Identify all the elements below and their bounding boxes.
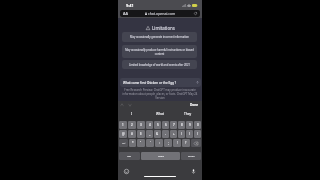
button[interactable]: 3 xyxy=(137,121,145,129)
staticText: 9 xyxy=(189,123,191,127)
staticText: ABC xyxy=(127,155,132,158)
staticText: chat.openai.com xyxy=(148,11,176,16)
staticText: ) xyxy=(189,132,190,136)
button[interactable]: What xyxy=(146,109,174,119)
button[interactable]: Backspace xyxy=(191,139,201,147)
staticText: Limitations xyxy=(152,25,175,31)
button[interactable]: ! xyxy=(173,139,181,147)
button[interactable]: They xyxy=(174,109,202,119)
staticText: " xyxy=(140,141,142,145)
staticText: May occasionally generate incorrect info… xyxy=(124,35,195,39)
staticText: @ xyxy=(122,132,125,136)
button[interactable]: ( xyxy=(178,130,185,138)
button[interactable]: Limited knowledge of world and events af… xyxy=(122,60,197,69)
button[interactable]: 8 xyxy=(178,121,185,129)
button[interactable]: space xyxy=(141,152,180,160)
staticText: 6 xyxy=(165,123,167,127)
staticText: 9:41 xyxy=(126,3,134,8)
staticText: & xyxy=(156,132,159,136)
staticText: ; xyxy=(168,141,169,145)
staticText: return xyxy=(188,155,195,158)
staticText: What xyxy=(156,112,164,116)
button[interactable]: May occasionally produce harmful instruc… xyxy=(122,45,197,58)
staticText: ! xyxy=(177,141,178,145)
staticText: # xyxy=(131,132,133,136)
staticText: May occasionally produce harmful instruc… xyxy=(124,48,195,56)
staticText: / xyxy=(197,132,199,136)
button[interactable]: 0 xyxy=(194,121,201,129)
button[interactable]: 4 xyxy=(146,121,153,129)
button[interactable]: AA xyxy=(120,10,200,17)
button[interactable]: 5 xyxy=(154,121,161,129)
staticText: ? xyxy=(185,141,187,145)
button[interactable]: + xyxy=(170,130,177,138)
button[interactable]: * xyxy=(129,139,136,147)
staticText: 7 xyxy=(173,123,175,127)
staticText: Done xyxy=(190,103,199,107)
other: Emoji xyxy=(124,169,129,174)
button[interactable]: return xyxy=(181,152,201,160)
staticText: + xyxy=(173,132,175,136)
button[interactable]: Done xyxy=(190,103,199,107)
button[interactable]: ABC xyxy=(119,152,140,160)
button[interactable]: _ xyxy=(146,130,153,138)
staticText: 1 xyxy=(122,123,124,127)
button[interactable]: ; xyxy=(164,139,172,147)
staticText: ( xyxy=(181,132,182,136)
button[interactable]: - xyxy=(162,130,169,138)
staticText: =\< xyxy=(122,142,126,145)
button[interactable]: ? xyxy=(182,139,190,147)
other: Next field xyxy=(128,103,132,107)
staticText: I xyxy=(131,112,133,116)
button[interactable]: ) xyxy=(186,130,193,138)
staticText: : xyxy=(159,141,160,145)
button[interactable]: 7 xyxy=(170,121,177,129)
button[interactable]: 2 xyxy=(128,121,136,129)
other: Voice input xyxy=(191,169,196,174)
staticText: 8 xyxy=(181,123,183,127)
button[interactable]: May occasionally generate incorrect info… xyxy=(122,32,197,42)
other: Send message xyxy=(196,81,199,84)
button[interactable]: $ xyxy=(137,130,145,138)
staticText: 4 xyxy=(149,123,151,127)
staticText: What came first Chicken or the Egg ? xyxy=(123,81,177,85)
staticText: ' xyxy=(150,141,151,145)
staticText: $ xyxy=(140,132,142,136)
button[interactable]: : xyxy=(155,139,163,147)
staticText: Free Research Preview. ChatGPT may produ… xyxy=(121,88,199,100)
staticText: 5 xyxy=(157,123,159,127)
button[interactable]: # xyxy=(128,130,136,138)
button[interactable]: I xyxy=(118,109,146,119)
button[interactable]: 1 xyxy=(119,121,127,129)
button[interactable]: 6 xyxy=(162,121,169,129)
button[interactable]: =\< xyxy=(119,139,128,147)
other: Reload xyxy=(194,12,197,15)
staticText: 0 xyxy=(197,123,199,127)
button[interactable]: @ xyxy=(119,130,127,138)
staticText: _ xyxy=(149,132,151,136)
button[interactable]: What came first Chicken or the Egg ? xyxy=(120,78,201,87)
staticText: * xyxy=(132,141,134,145)
staticText: They xyxy=(184,112,192,116)
other: Previous field xyxy=(120,103,124,107)
staticText: - xyxy=(165,132,166,136)
button[interactable]: & xyxy=(154,130,161,138)
staticText: space xyxy=(158,155,164,158)
staticText: Limited knowledge of world and events af… xyxy=(124,63,195,67)
staticText: AA xyxy=(123,11,128,16)
staticText: 2 xyxy=(131,123,133,127)
button[interactable]: / xyxy=(194,130,201,138)
button[interactable]: ' xyxy=(146,139,154,147)
button[interactable]: " xyxy=(137,139,145,147)
button[interactable]: 9 xyxy=(186,121,193,129)
staticText: 3 xyxy=(140,123,142,127)
